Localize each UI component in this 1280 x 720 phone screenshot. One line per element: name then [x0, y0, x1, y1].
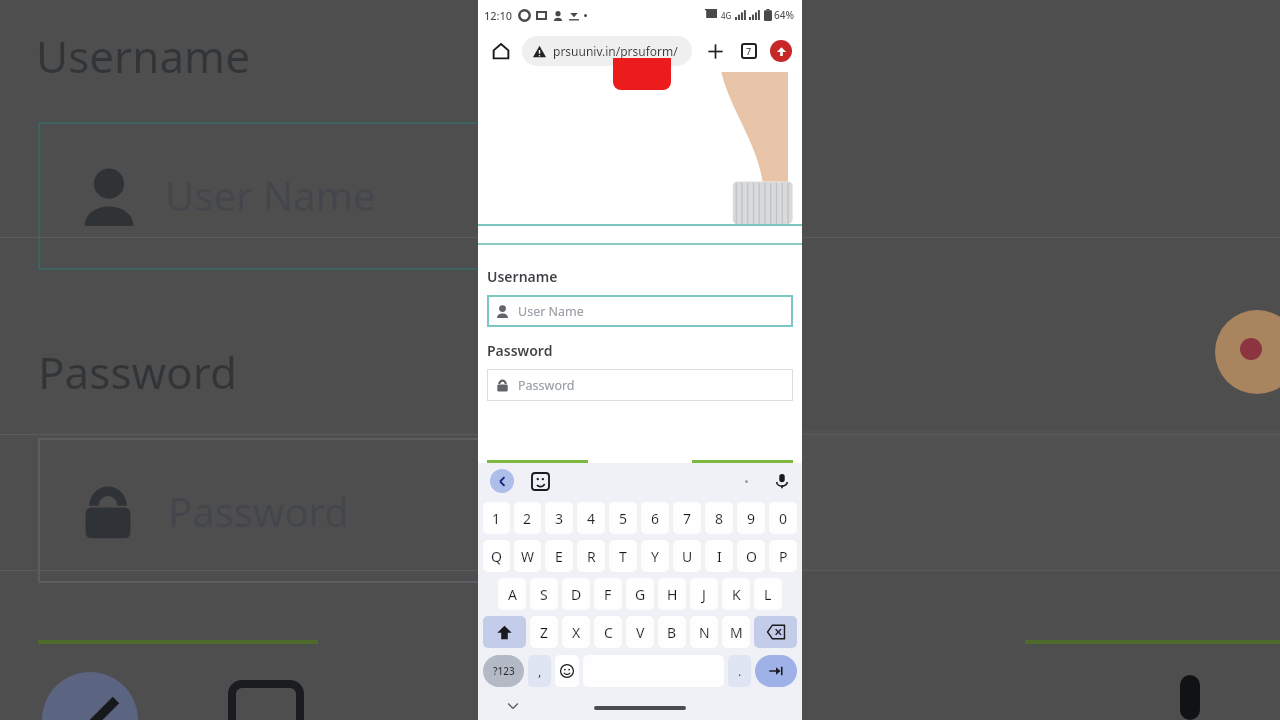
staticText: 8: [715, 509, 724, 528]
staticText: User Name: [165, 168, 376, 222]
button[interactable]: Q: [483, 540, 510, 572]
button[interactable]: prsuuniv.in/prsuform/: [522, 36, 692, 66]
button[interactable]: .: [728, 655, 751, 687]
button[interactable]: 3: [545, 502, 573, 534]
button[interactable]: Backspace: [754, 616, 797, 648]
button[interactable]: Password: [487, 369, 793, 401]
button[interactable]: 5: [609, 502, 637, 534]
button[interactable]: Voice input: [774, 473, 790, 489]
button[interactable]: New tab: [702, 38, 728, 64]
button[interactable]: Shift: [483, 616, 526, 648]
button[interactable]: I: [705, 540, 733, 572]
staticText: 3: [555, 509, 564, 528]
button[interactable]: T: [609, 540, 637, 572]
staticText: User Name: [518, 303, 584, 320]
staticText: .: [738, 662, 742, 680]
button[interactable]: V: [626, 616, 654, 648]
button[interactable]: E: [545, 540, 573, 572]
staticText: R: [587, 547, 596, 566]
staticText: G: [635, 585, 646, 604]
staticText: 64%: [774, 8, 794, 22]
staticText: 9: [747, 509, 756, 528]
button[interactable]: ?123: [483, 655, 524, 687]
staticText: C: [604, 623, 613, 642]
button[interactable]: D: [562, 578, 590, 610]
button[interactable]: C: [594, 616, 622, 648]
button[interactable]: 8: [705, 502, 733, 534]
staticText: S: [540, 585, 548, 604]
button[interactable]: 1: [483, 502, 510, 534]
button[interactable]: 7: [673, 502, 701, 534]
button[interactable]: Z: [530, 616, 558, 648]
button[interactable]: Hide keyboard: [504, 697, 522, 715]
button[interactable]: Home: [488, 38, 514, 64]
staticText: 4: [587, 509, 596, 528]
staticText: E: [555, 547, 563, 566]
button[interactable]: G: [626, 578, 654, 610]
staticText: N: [699, 623, 710, 642]
button[interactable]: U: [673, 540, 701, 572]
staticText: Z: [540, 623, 549, 642]
staticText: 2: [523, 509, 532, 528]
staticText: Username: [487, 267, 558, 286]
staticText: 0: [779, 509, 788, 528]
button[interactable]: ,: [528, 655, 551, 687]
button[interactable]: O: [737, 540, 765, 572]
staticText: Password: [38, 342, 238, 402]
staticText: Password: [487, 341, 553, 360]
button[interactable]: R: [577, 540, 605, 572]
button[interactable]: J: [690, 578, 718, 610]
button[interactable]: S: [530, 578, 558, 610]
staticText: 5: [619, 509, 628, 528]
staticText: prsuuniv.in/prsuform/: [553, 43, 678, 59]
staticText: T: [619, 547, 627, 566]
staticText: 1: [492, 509, 501, 528]
button[interactable]: Y: [641, 540, 669, 572]
button[interactable]: K: [722, 578, 750, 610]
staticText: F: [604, 585, 612, 604]
button[interactable]: Tabs: [736, 38, 762, 64]
button[interactable]: F: [594, 578, 622, 610]
staticText: Y: [651, 547, 659, 566]
button[interactable]: M: [722, 616, 750, 648]
button[interactable]: A: [498, 578, 526, 610]
staticText: 12:10: [484, 8, 513, 23]
staticText: M: [730, 623, 743, 642]
button[interactable]: H: [658, 578, 686, 610]
staticText: ,: [538, 662, 542, 680]
staticText: H: [667, 585, 678, 604]
button[interactable]: Account: [770, 40, 792, 62]
button[interactable]: Enter: [755, 655, 797, 687]
staticText: P: [779, 547, 788, 566]
button[interactable]: N: [690, 616, 718, 648]
staticText: O: [746, 547, 757, 566]
staticText: 7: [746, 45, 752, 57]
button[interactable]: Stickers: [532, 473, 549, 490]
staticText: Username: [36, 26, 251, 86]
staticText: A: [508, 585, 517, 604]
button[interactable]: 2: [514, 502, 541, 534]
button[interactable]: 4: [577, 502, 605, 534]
staticText: J: [702, 585, 706, 604]
button[interactable]: 9: [737, 502, 765, 534]
staticText: Password: [168, 484, 349, 538]
staticText: L: [764, 585, 772, 604]
staticText: X: [572, 623, 581, 642]
staticText: 6: [651, 509, 660, 528]
button[interactable]: 0: [769, 502, 797, 534]
button[interactable]: User Name: [487, 295, 793, 327]
button[interactable]: 6: [641, 502, 669, 534]
button[interactable]: B: [658, 616, 686, 648]
staticText: Password: [518, 377, 575, 394]
button[interactable]: L: [754, 578, 782, 610]
button[interactable]: Emoji: [555, 655, 579, 687]
button[interactable]: Back: [490, 469, 514, 493]
button[interactable]: P: [769, 540, 797, 572]
staticText: V: [636, 623, 645, 642]
staticText: 7: [683, 509, 692, 528]
button[interactable]: X: [562, 616, 590, 648]
staticText: B: [667, 623, 677, 642]
button[interactable]: W: [514, 540, 541, 572]
staticText: I: [717, 547, 722, 566]
